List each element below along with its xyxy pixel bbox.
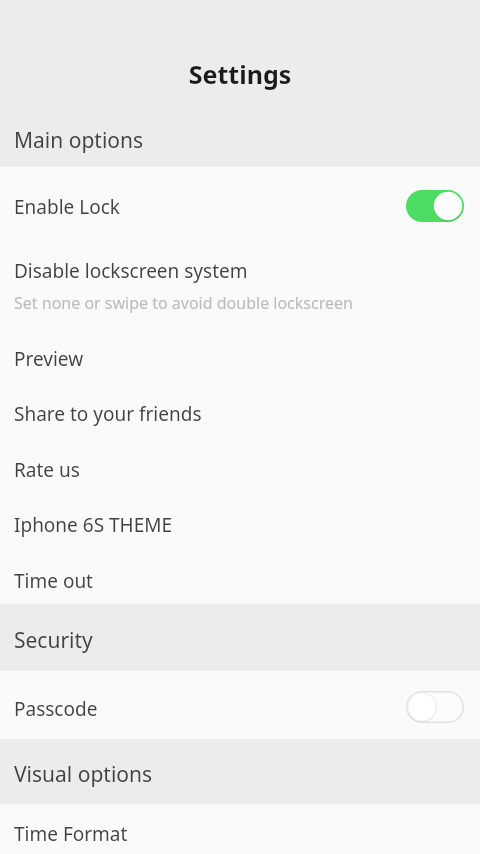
staticText: Visual options bbox=[14, 760, 153, 789]
staticText: Time Format bbox=[14, 821, 128, 847]
staticText: Main options bbox=[14, 126, 144, 155]
button[interactable]: Preview bbox=[0, 330, 480, 385]
button[interactable]: Disable lockscreen system bbox=[0, 239, 480, 330]
staticText: Passcode bbox=[14, 696, 98, 722]
staticText: Rate us bbox=[14, 457, 80, 483]
staticText: Iphone 6S THEME bbox=[14, 512, 173, 538]
staticText: Set none or swipe to avoid double locksc… bbox=[14, 292, 353, 314]
button[interactable]: Enable Lock bbox=[0, 167, 480, 239]
staticText: Settings bbox=[0, 57, 480, 91]
staticText: Disable lockscreen system bbox=[14, 258, 248, 284]
button[interactable]: Time out bbox=[0, 552, 480, 604]
button[interactable]: Time Format bbox=[0, 804, 480, 854]
button[interactable]: Share to your friends bbox=[0, 385, 480, 441]
button[interactable]: Iphone 6S THEME bbox=[0, 496, 480, 552]
staticText: Preview bbox=[14, 346, 84, 372]
button[interactable]: Enable Lock bbox=[406, 190, 464, 222]
staticText: Enable Lock bbox=[14, 194, 120, 220]
staticText: Time out bbox=[14, 568, 93, 594]
staticText: Share to your friends bbox=[14, 401, 202, 427]
button[interactable]: Rate us bbox=[0, 441, 480, 496]
button[interactable]: Passcode bbox=[0, 671, 480, 739]
staticText: Security bbox=[14, 626, 93, 655]
button[interactable]: Passcode bbox=[406, 691, 464, 723]
